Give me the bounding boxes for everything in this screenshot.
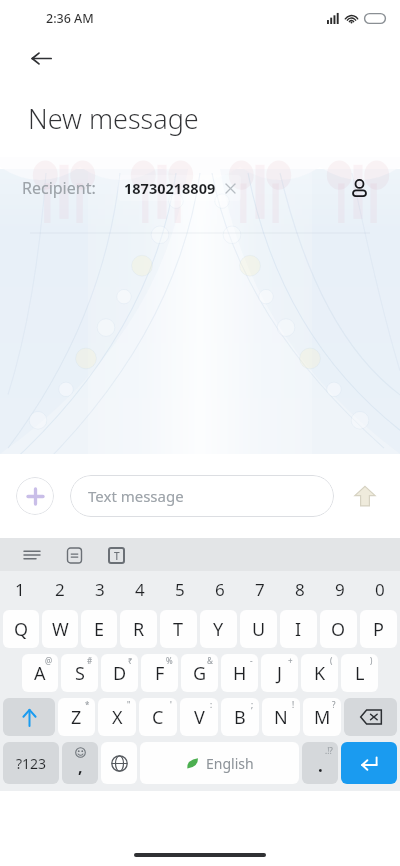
button[interactable]: Comma and emoji bbox=[62, 742, 98, 784]
staticText: P bbox=[373, 617, 384, 642]
staticText: ! bbox=[292, 699, 295, 710]
staticText: ) bbox=[370, 655, 373, 666]
button[interactable]: Text formatting bbox=[102, 541, 130, 569]
button[interactable]: Clipboard bbox=[60, 541, 88, 569]
button[interactable]: H bbox=[221, 654, 258, 692]
button[interactable]: 1 bbox=[0, 571, 40, 607]
staticText: O bbox=[331, 617, 346, 642]
button[interactable]: 4 bbox=[120, 571, 160, 607]
staticText: T bbox=[114, 549, 120, 563]
staticText: A bbox=[34, 661, 46, 686]
button[interactable]: 2 bbox=[40, 571, 80, 607]
staticText: 6 bbox=[215, 578, 225, 601]
button[interactable]: 6 bbox=[200, 571, 240, 607]
staticText: 0 bbox=[375, 578, 385, 601]
staticText: L bbox=[355, 661, 365, 686]
staticText: C bbox=[152, 705, 164, 730]
button[interactable]: O bbox=[320, 610, 357, 648]
button[interactable]: Add attachment bbox=[16, 477, 54, 515]
button[interactable]: Send bbox=[346, 477, 384, 515]
button[interactable]: Back bbox=[22, 39, 60, 77]
button[interactable]: Z bbox=[58, 698, 95, 736]
staticText: K bbox=[314, 661, 326, 686]
staticText: V bbox=[194, 705, 205, 730]
button[interactable]: 18730218809 bbox=[118, 175, 241, 201]
staticText: ?123 bbox=[16, 754, 47, 773]
button[interactable]: 7 bbox=[240, 571, 280, 607]
button[interactable]: M bbox=[303, 698, 341, 736]
button[interactable]: C bbox=[139, 698, 177, 736]
staticText: ; bbox=[251, 699, 254, 710]
staticText: G bbox=[193, 661, 207, 686]
staticText: 9 bbox=[335, 578, 345, 601]
button[interactable]: Backspace bbox=[344, 698, 397, 736]
button[interactable]: N bbox=[262, 698, 300, 736]
button[interactable]: I bbox=[280, 610, 317, 648]
staticText: * bbox=[85, 699, 90, 710]
button[interactable]: K bbox=[301, 654, 338, 692]
button[interactable]: S bbox=[61, 654, 98, 692]
staticText: 8 bbox=[295, 578, 305, 601]
button[interactable]: D bbox=[101, 654, 138, 692]
button[interactable]: E bbox=[81, 610, 117, 648]
staticText: 1 bbox=[15, 578, 25, 601]
button[interactable]: Enter bbox=[341, 742, 397, 784]
staticText: English bbox=[206, 754, 254, 773]
staticText: R bbox=[133, 617, 145, 642]
button[interactable]: W bbox=[42, 610, 78, 648]
staticText: Text message bbox=[88, 486, 184, 506]
staticText: M bbox=[314, 705, 331, 730]
staticText: F bbox=[155, 661, 165, 686]
button[interactable]: L bbox=[341, 654, 378, 692]
staticText: # bbox=[87, 655, 93, 666]
button[interactable]: J bbox=[261, 654, 298, 692]
button[interactable]: P bbox=[360, 610, 397, 648]
button[interactable]: Change language bbox=[101, 742, 137, 784]
button[interactable]: V bbox=[180, 698, 218, 736]
staticText: H bbox=[233, 661, 247, 686]
button[interactable]: F bbox=[141, 654, 178, 692]
staticText: 4 bbox=[135, 578, 145, 601]
staticText: .!? bbox=[325, 745, 333, 756]
button[interactable]: 0 bbox=[360, 571, 400, 607]
staticText: X bbox=[112, 705, 123, 730]
staticText: Z bbox=[71, 705, 82, 730]
staticText: W bbox=[52, 617, 69, 642]
staticText: E bbox=[94, 617, 105, 642]
staticText: N bbox=[274, 705, 288, 730]
staticText: Q bbox=[14, 617, 29, 642]
button[interactable]: R bbox=[120, 610, 157, 648]
staticText: 2 bbox=[55, 578, 65, 601]
button[interactable]: T bbox=[160, 610, 197, 648]
button[interactable]: Y bbox=[200, 610, 237, 648]
button[interactable]: 5 bbox=[160, 571, 200, 607]
staticText: ( bbox=[330, 655, 333, 666]
staticText: @ bbox=[45, 655, 53, 666]
button[interactable]: G bbox=[181, 654, 218, 692]
button[interactable]: Keyboard menu bbox=[18, 541, 46, 569]
staticText: U bbox=[252, 617, 266, 642]
button[interactable]: Choose contact bbox=[340, 169, 378, 207]
staticText: ₹ bbox=[128, 655, 133, 666]
button[interactable]: B bbox=[221, 698, 259, 736]
staticText: 5 bbox=[175, 578, 185, 601]
button[interactable]: Text message bbox=[70, 475, 334, 517]
staticText: ' bbox=[170, 699, 172, 710]
button[interactable]: 8 bbox=[280, 571, 320, 607]
button[interactable]: Period bbox=[302, 742, 338, 784]
staticText: I bbox=[295, 617, 302, 642]
button[interactable]: 3 bbox=[80, 571, 120, 607]
button[interactable]: English bbox=[140, 742, 299, 784]
staticText: 3 bbox=[95, 578, 105, 601]
button[interactable]: 9 bbox=[320, 571, 360, 607]
button[interactable]: X bbox=[98, 698, 136, 736]
button[interactable]: Q bbox=[3, 610, 39, 648]
staticText: - bbox=[250, 655, 253, 666]
staticText: + bbox=[288, 655, 293, 666]
staticText: J bbox=[277, 661, 282, 686]
button[interactable]: A bbox=[22, 654, 58, 692]
button[interactable]: U bbox=[240, 610, 277, 648]
button[interactable]: ?123 bbox=[3, 742, 59, 784]
button[interactable]: Shift bbox=[3, 698, 55, 736]
staticText: : bbox=[210, 699, 213, 710]
